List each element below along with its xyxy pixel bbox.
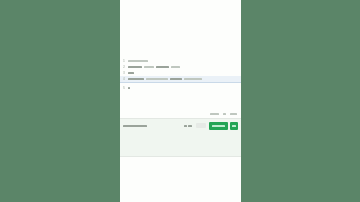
staticText: 3 <box>123 71 125 75</box>
button[interactable]: Language mode <box>229 113 238 115</box>
staticText: 4 <box>123 77 125 81</box>
staticText: 2 <box>123 65 125 69</box>
button[interactable]: Line and column indicator <box>209 113 220 115</box>
button[interactable]: Options <box>183 125 193 127</box>
button[interactable]: Submit <box>209 122 228 130</box>
staticText: 5 <box>123 86 125 90</box>
button[interactable]: 4 <box>120 76 241 82</box>
staticText: 1 <box>123 59 125 63</box>
button[interactable]: More submit options <box>230 122 238 130</box>
button[interactable]: Encoding <box>222 113 227 115</box>
